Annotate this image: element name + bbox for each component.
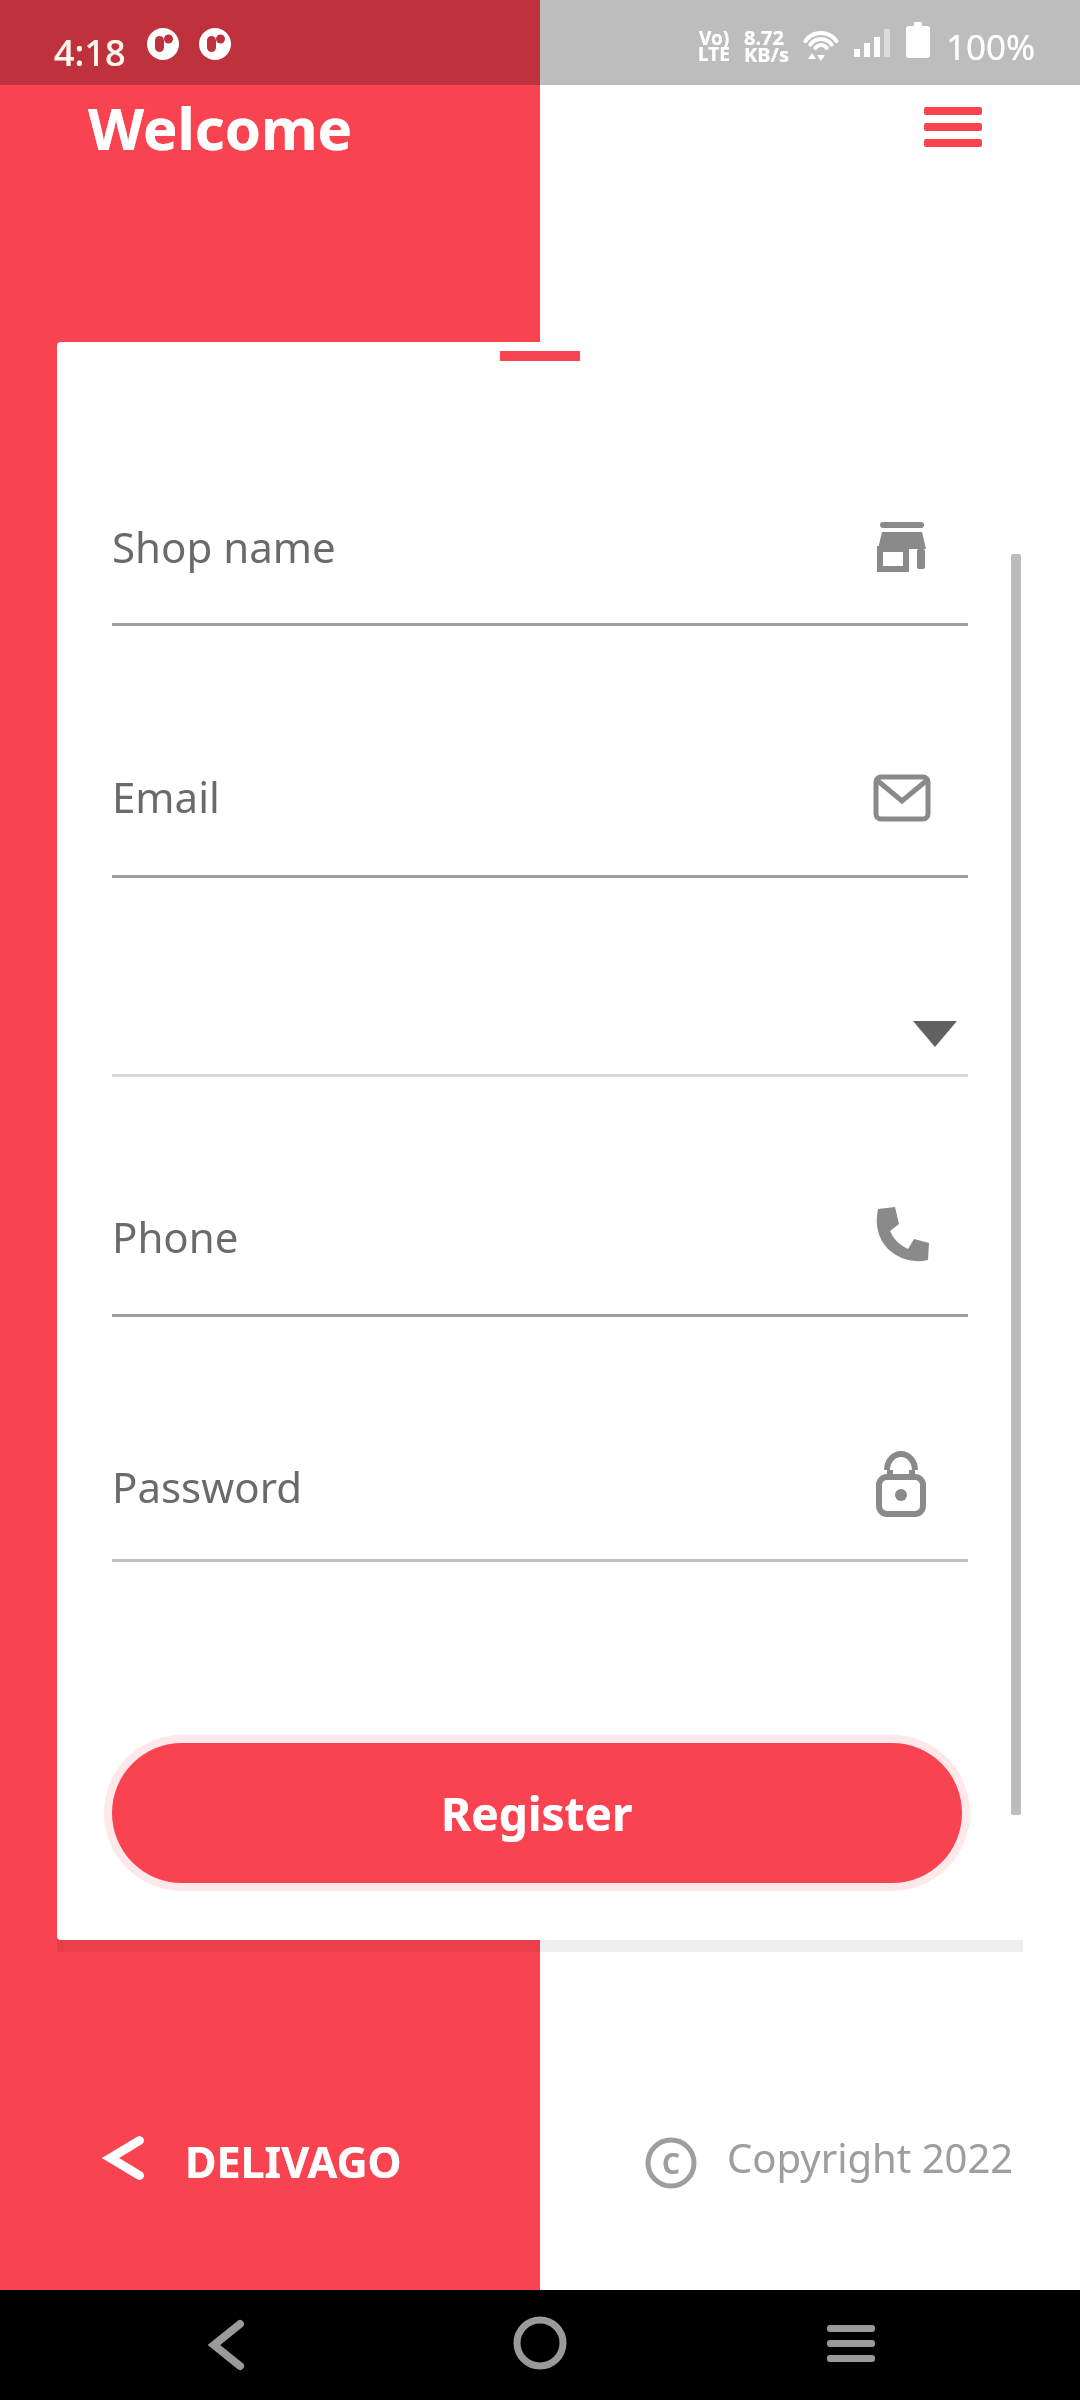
- staticText: 8.72: [744, 24, 784, 51]
- staticText: Email: [112, 768, 220, 825]
- staticText: KB/s: [744, 41, 789, 68]
- staticText: Copyright 2022: [727, 2130, 1014, 2184]
- button[interactable]: [190, 2305, 270, 2385]
- button[interactable]: [913, 1021, 957, 1047]
- staticText: Vo): [699, 25, 730, 51]
- staticText: Password: [112, 1458, 302, 1515]
- staticText: DELIVAGO: [185, 2132, 402, 2191]
- button[interactable]: [924, 100, 982, 152]
- button[interactable]: Register: [112, 1743, 962, 1883]
- button[interactable]: [500, 2305, 580, 2385]
- button[interactable]: [810, 2305, 890, 2385]
- staticText: 100%: [946, 23, 1036, 71]
- staticText: 4:18: [54, 28, 126, 77]
- staticText: Register: [441, 1782, 633, 1845]
- staticText: C: [662, 2144, 680, 2182]
- staticText: Shop name: [112, 518, 336, 575]
- staticText: LTE: [698, 41, 730, 67]
- staticText: Phone: [112, 1208, 239, 1265]
- staticText: Welcome: [88, 88, 353, 167]
